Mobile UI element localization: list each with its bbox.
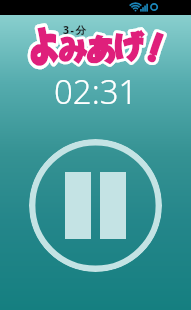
staticText: ! bbox=[142, 23, 169, 70]
staticText: あ bbox=[86, 27, 116, 70]
staticText: げ bbox=[113, 23, 143, 68]
staticText: よ bbox=[28, 16, 58, 74]
staticText: げ bbox=[113, 23, 143, 68]
staticText: あ bbox=[86, 27, 116, 70]
staticText: み bbox=[58, 28, 87, 69]
staticText: み bbox=[58, 28, 87, 69]
staticText: ! bbox=[142, 23, 169, 70]
staticText: 02:31 bbox=[54, 69, 138, 114]
staticText: 3-分 bbox=[63, 23, 88, 37]
button[interactable]: Pause bbox=[29, 139, 162, 272]
staticText: よ bbox=[28, 16, 58, 74]
